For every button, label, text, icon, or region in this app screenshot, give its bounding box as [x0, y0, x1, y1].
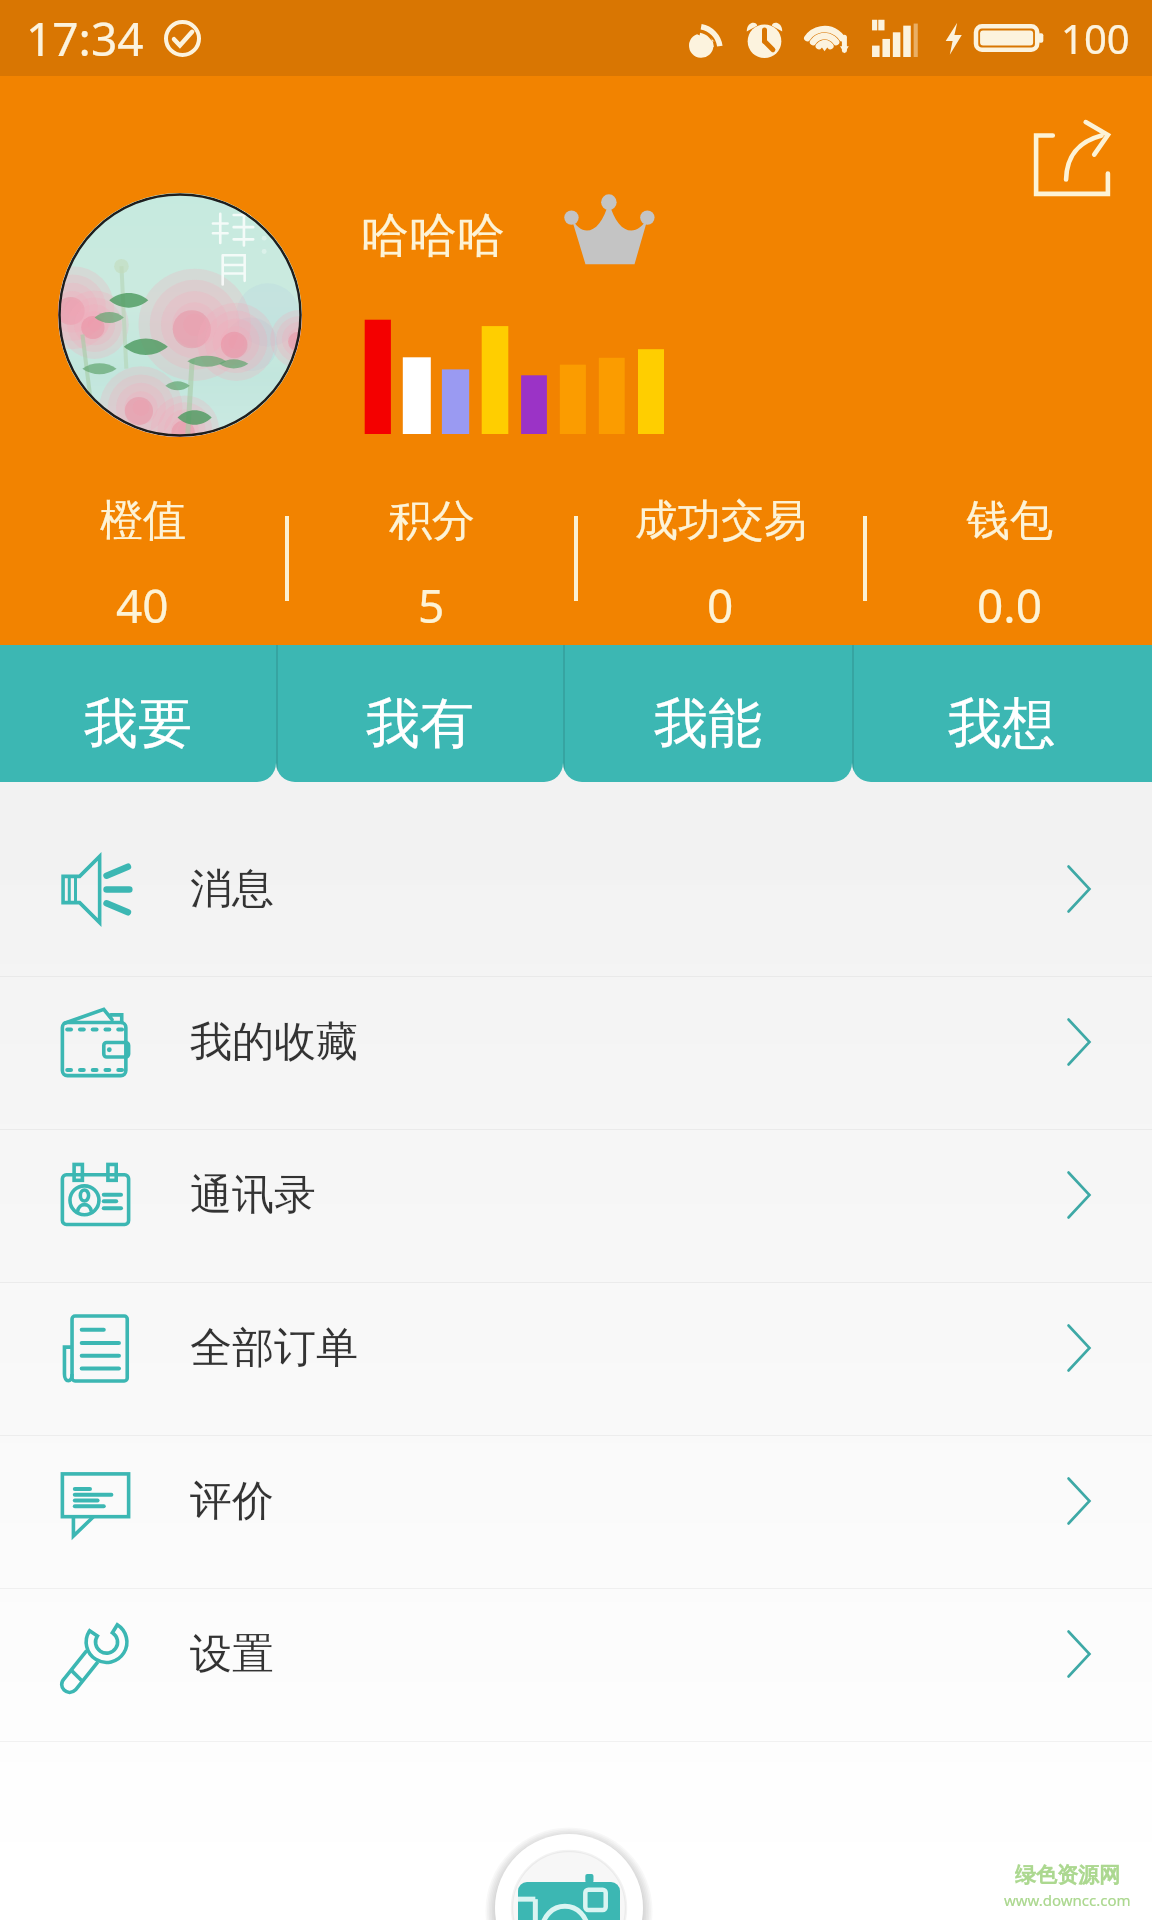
staticText: 消息 — [190, 863, 274, 916]
staticText: 橙值 — [100, 494, 186, 548]
staticText: 绿色资源网 — [1015, 1862, 1120, 1888]
button[interactable]: 积分 — [289, 485, 574, 645]
staticText: 我要 — [84, 690, 192, 758]
staticText: 0.0 — [977, 574, 1042, 637]
staticText: 我的收藏 — [190, 1016, 358, 1069]
button[interactable]: 我有 — [276, 645, 563, 782]
button[interactable]: 设置 — [0, 1589, 1152, 1741]
button[interactable]: 评价 — [0, 1436, 1152, 1588]
button[interactable]: 成功交易 — [578, 485, 863, 645]
staticText: 设置 — [190, 1628, 274, 1681]
staticText: 成功交易 — [635, 494, 807, 548]
staticText: 积分 — [389, 494, 475, 548]
staticText: 100 — [1061, 11, 1130, 65]
button[interactable]: Camera — [484, 1823, 654, 1920]
button[interactable]: 钱包 — [867, 485, 1152, 645]
button[interactable]: 通讯录 — [0, 1130, 1152, 1282]
staticText: 通讯录 — [190, 1169, 316, 1222]
staticText: 40 — [116, 574, 169, 637]
button[interactable]: 我的收藏 — [0, 977, 1152, 1129]
staticText: www.downcc.com — [1004, 1890, 1131, 1910]
staticText: 评价 — [190, 1475, 274, 1528]
staticText: 5 — [418, 574, 445, 637]
staticText: 17:34 — [26, 7, 144, 70]
button[interactable]: 全部订单 — [0, 1283, 1152, 1435]
staticText: 我想 — [948, 690, 1056, 758]
staticText: 钱包 — [967, 494, 1053, 548]
staticText: 我有 — [366, 690, 474, 758]
button[interactable]: Share — [1020, 106, 1122, 208]
button[interactable]: 橙值 — [0, 485, 285, 645]
button[interactable]: 我要 — [0, 645, 276, 782]
staticText: 我能 — [654, 690, 762, 758]
button[interactable]: Profile photo — [58, 193, 302, 437]
button[interactable]: 消息 — [0, 824, 1152, 976]
button[interactable]: 我想 — [852, 645, 1152, 782]
button[interactable]: 我能 — [563, 645, 852, 782]
staticText: 哈哈哈 — [361, 206, 505, 266]
staticText: 全部订单 — [190, 1322, 358, 1375]
staticText: 0 — [707, 574, 734, 637]
